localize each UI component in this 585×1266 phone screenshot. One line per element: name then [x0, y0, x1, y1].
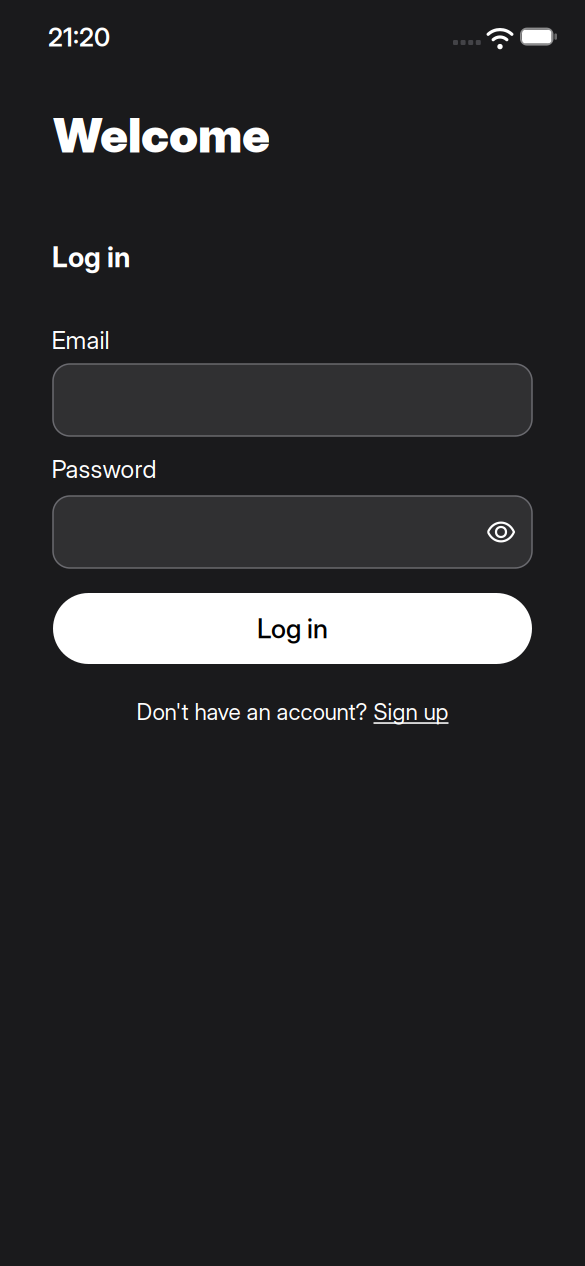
button[interactable]: Show password [486, 522, 516, 542]
staticText: Don't have an account? Sign up [136, 698, 448, 725]
staticText: Log in [257, 612, 328, 645]
staticText: Log in [52, 240, 130, 274]
button[interactable]: Password [53, 496, 532, 568]
button[interactable]: Email [53, 364, 532, 436]
button[interactable]: Log in [53, 593, 532, 664]
staticText: Email [51, 325, 109, 355]
staticText: Password [51, 454, 156, 484]
button[interactable]: Don't have an account? Sign up [136, 698, 448, 725]
staticText: Welcome [53, 106, 270, 164]
staticText: 21:20 [48, 22, 110, 53]
